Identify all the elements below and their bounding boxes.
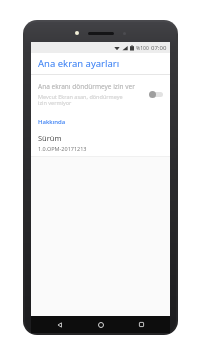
button[interactable]: Ana ekranı döndürmeye izin ver <box>149 90 164 99</box>
button[interactable]: Ana ekranı döndürmeye izin ver <box>31 78 170 111</box>
staticText: %100 <box>136 45 149 52</box>
button[interactable]: Ana ekran ayarları <box>31 53 170 74</box>
button[interactable]: Back <box>49 316 71 333</box>
staticText: Sürüm <box>38 133 62 143</box>
button[interactable]: Sürüm <box>31 131 170 156</box>
button[interactable]: Recent apps <box>130 316 152 333</box>
staticText: Hakkında <box>38 118 66 126</box>
button[interactable]: Home <box>90 316 112 333</box>
staticText: 1.0.OPM-20171213 <box>38 145 87 152</box>
staticText: Ana ekranı döndürmeye izin ver <box>38 82 135 91</box>
staticText: 07:00 <box>151 44 167 52</box>
staticText: Mevcut Ekran asan, döndürmeye izin vermi… <box>38 93 123 107</box>
staticText: Ana ekran ayarları <box>38 57 120 70</box>
